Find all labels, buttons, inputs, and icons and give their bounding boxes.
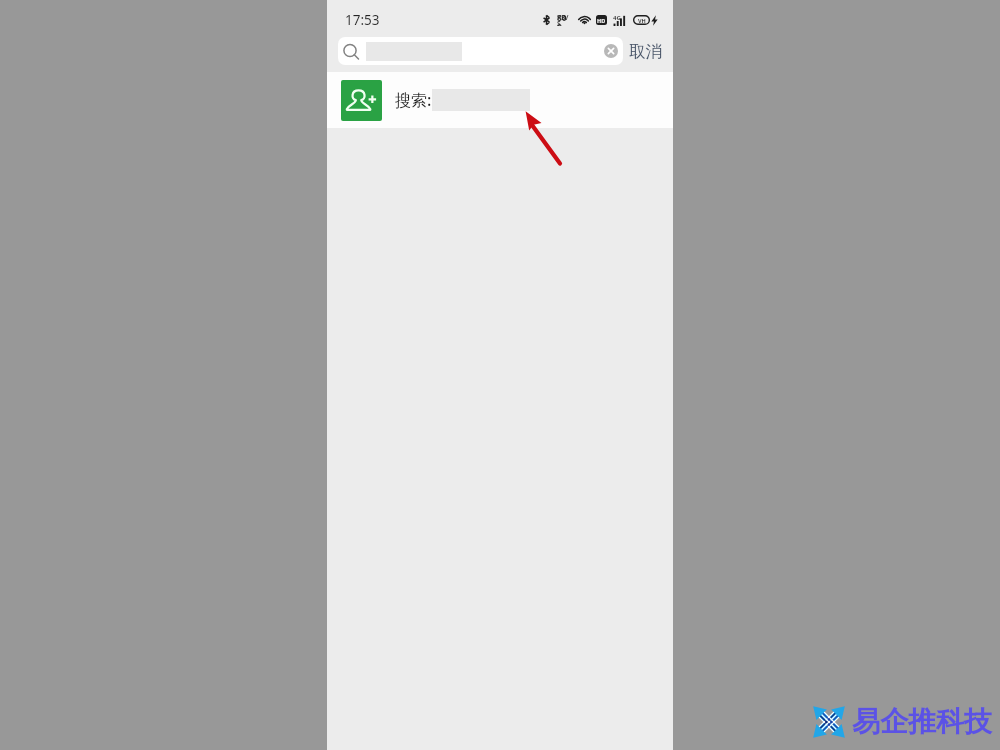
staticText: 4G	[613, 14, 621, 22]
staticText: VH	[638, 17, 646, 24]
staticText: HD	[597, 17, 606, 24]
button[interactable]: Clear search	[599, 39, 623, 63]
button[interactable]: 搜索:	[327, 72, 673, 128]
staticText: 809	[557, 12, 571, 26]
button[interactable]: Clear search	[338, 37, 623, 65]
staticText: 取消	[629, 41, 662, 62]
staticText: 17:53	[345, 11, 380, 29]
staticText: 搜索:	[395, 89, 432, 111]
staticText: KB/S	[557, 13, 571, 27]
staticText: 易企推科技	[852, 704, 992, 739]
button[interactable]: 取消	[623, 37, 663, 65]
